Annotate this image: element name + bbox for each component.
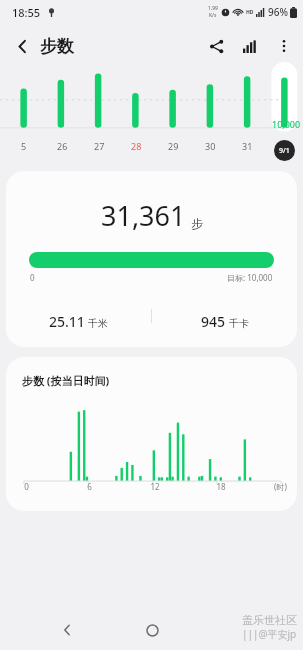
staticText: 96% <box>268 5 288 19</box>
button[interactable]: 31 <box>242 140 253 152</box>
staticText: 1,99 <box>208 5 218 12</box>
staticText: 18:55 <box>12 5 41 20</box>
button[interactable]: 步数 (按当日时间) <box>6 357 297 511</box>
button[interactable]: Back <box>4 28 40 64</box>
staticText: 0 <box>24 481 29 492</box>
button[interactable]: Back <box>49 612 85 648</box>
staticText: (时) <box>274 481 287 492</box>
button[interactable]: 5 <box>21 140 27 152</box>
staticText: 盖乐世社区 <box>242 613 297 627</box>
button[interactable]: 31,361 <box>6 171 297 347</box>
button[interactable]: Share <box>199 29 233 63</box>
button[interactable]: More options <box>267 29 301 63</box>
button[interactable]: 26 <box>57 140 68 152</box>
staticText: HD <box>246 9 254 16</box>
button[interactable]: 25.11 <box>6 301 151 331</box>
button[interactable]: 945 <box>152 301 297 331</box>
button[interactable]: Recents <box>218 612 254 648</box>
staticText: 10,000 <box>272 118 301 130</box>
staticText: 25.11 <box>49 312 85 331</box>
staticText: 9/1 <box>279 146 290 156</box>
button[interactable]: 30 <box>205 140 216 152</box>
button[interactable]: 28 <box>131 140 142 152</box>
staticText: 6 <box>87 481 92 492</box>
staticText: 31,361 <box>101 197 186 234</box>
staticText: 步数 <box>40 36 74 57</box>
staticText: 目标: 10,000 <box>227 272 273 283</box>
button[interactable]: 29 <box>168 140 179 152</box>
staticText: 0 <box>30 272 35 283</box>
staticText: 千卡 <box>229 317 249 330</box>
staticText: K/s <box>209 12 217 19</box>
staticText: 步 <box>191 216 203 231</box>
staticText: 12 <box>150 481 160 492</box>
staticText: 945 <box>201 312 226 331</box>
button[interactable]: Chart <box>233 29 267 63</box>
staticText: 千米 <box>88 317 108 330</box>
staticText: 步数 (按当日时间) <box>22 373 110 388</box>
button[interactable]: 27 <box>94 140 105 152</box>
staticText: 18 <box>216 481 226 492</box>
button[interactable]: Home <box>134 612 170 648</box>
button[interactable]: 9/1 <box>274 140 295 161</box>
staticText: |||@平安jp <box>242 627 297 641</box>
